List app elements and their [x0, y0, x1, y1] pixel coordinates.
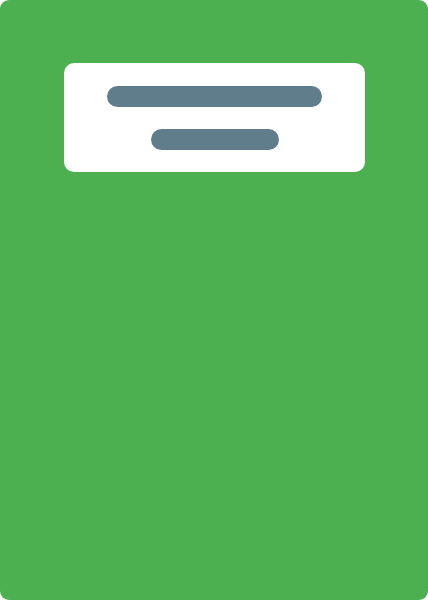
button[interactable]: Loading content card [64, 63, 365, 172]
